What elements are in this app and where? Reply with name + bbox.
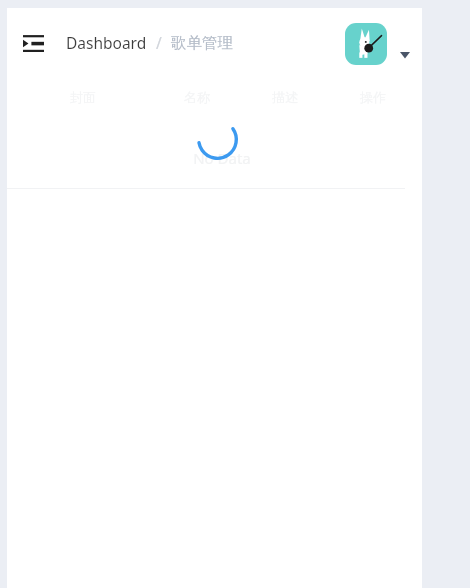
staticText: No Data — [193, 148, 251, 168]
button[interactable]: Toggle navigation menu — [13, 23, 54, 64]
staticText: / — [156, 32, 162, 53]
staticText: 歌单管理 — [171, 33, 233, 53]
staticText: 描述 — [272, 89, 298, 105]
staticText: Dashboard — [66, 32, 147, 53]
button[interactable]: Open account menu — [394, 44, 416, 66]
staticText: 封面 — [70, 89, 96, 105]
button[interactable]: Dashboard — [66, 32, 147, 53]
staticText: 名称 — [184, 89, 210, 105]
staticText: 操作 — [360, 89, 386, 105]
button[interactable]: 歌单管理 — [171, 33, 233, 53]
button[interactable]: User profile avatar — [345, 23, 387, 65]
